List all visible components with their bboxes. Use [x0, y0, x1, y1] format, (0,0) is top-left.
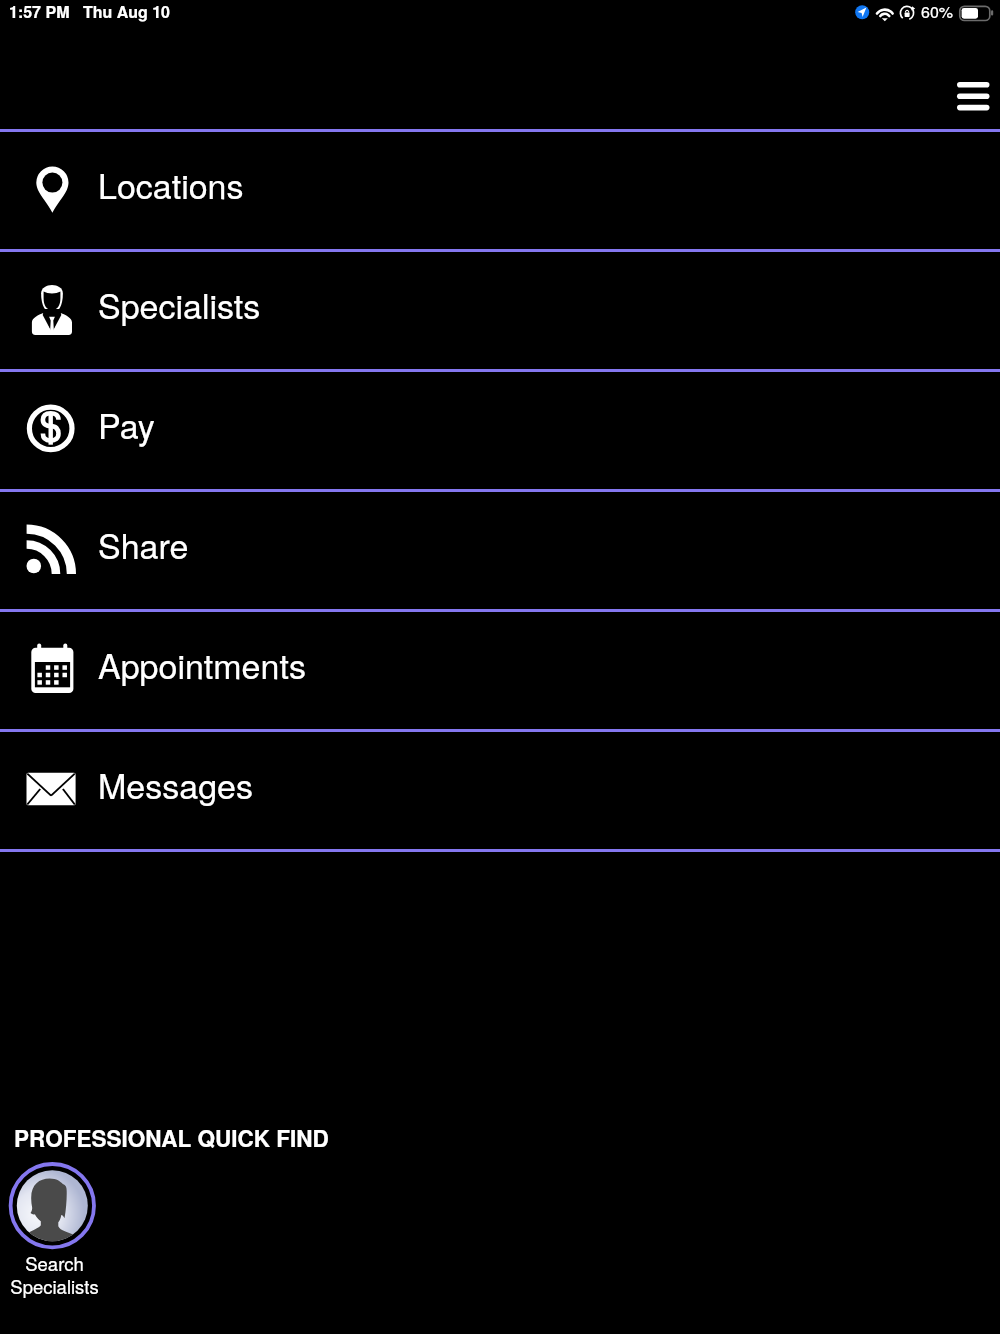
staticText: Thu Aug 10 [83, 0, 170, 23]
staticText: 1:57 PM [9, 0, 70, 23]
button[interactable]: Share [0, 492, 1000, 609]
button[interactable]: Appointments [0, 612, 1000, 729]
button[interactable]: Locations [0, 132, 1000, 249]
staticText: Specialists [98, 280, 261, 329]
staticText: Messages [98, 760, 253, 809]
button[interactable]: Open menu [938, 64, 1000, 130]
staticText: PROFESSIONAL QUICK FIND [14, 1122, 329, 1154]
staticText: 60% [921, 0, 954, 23]
staticText: Search Specialists [4, 1250, 105, 1299]
button[interactable]: Specialists [0, 252, 1000, 369]
button[interactable]: Pay [0, 372, 1000, 489]
staticText: Appointments [98, 640, 306, 689]
staticText: Locations [98, 160, 244, 209]
staticText: Pay [98, 400, 155, 449]
button[interactable]: Search Specialists [3, 1152, 104, 1302]
button[interactable]: Messages [0, 732, 1000, 849]
staticText: Share [98, 520, 189, 569]
